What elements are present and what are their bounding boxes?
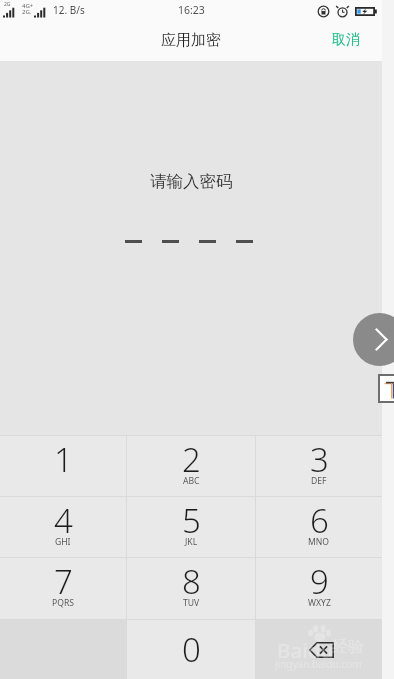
- staticText: jingyan.baidu.com: [275, 657, 362, 671]
- button[interactable]: 7: [0, 558, 126, 619]
- staticText: 4G+: [22, 2, 34, 10]
- staticText: 16:23: [178, 3, 205, 17]
- staticText: 取消: [332, 31, 360, 49]
- button[interactable]: Backspace: [256, 620, 382, 679]
- staticText: 2G.: [22, 8, 32, 16]
- staticText: 2G: [4, 1, 11, 8]
- staticText: PQRS: [52, 597, 74, 609]
- staticText: 1: [54, 437, 73, 482]
- staticText: 经验: [332, 637, 364, 657]
- staticText: ABC: [183, 475, 200, 487]
- button[interactable]: 1: [0, 436, 126, 496]
- button[interactable]: 3: [256, 436, 382, 496]
- staticText: 8: [182, 559, 201, 604]
- button[interactable]: 0: [127, 620, 255, 679]
- staticText: 12. B/s: [53, 3, 85, 17]
- button[interactable]: 5: [127, 497, 255, 557]
- staticText: GHI: [55, 536, 71, 548]
- button[interactable]: 8: [127, 558, 255, 619]
- button[interactable]: 取消: [310, 25, 382, 59]
- staticText: 请输入密码: [150, 171, 233, 192]
- button[interactable]: 6: [256, 497, 382, 557]
- staticText: 2: [182, 437, 201, 482]
- staticText: 7: [54, 559, 73, 604]
- staticText: DEF: [311, 475, 327, 487]
- staticText: MNO: [308, 536, 330, 548]
- staticText: 4: [54, 498, 73, 543]
- staticText: Baidu: [277, 636, 334, 664]
- staticText: 9: [310, 559, 329, 604]
- staticText: WXYZ: [308, 597, 331, 609]
- staticText: 0: [182, 627, 201, 672]
- staticText: JKL: [185, 536, 198, 548]
- staticText: 5: [182, 498, 201, 543]
- button[interactable]: 9: [256, 558, 382, 619]
- staticText: 应用加密: [161, 31, 221, 50]
- staticText: TUV: [183, 597, 200, 609]
- button[interactable]: 4: [0, 497, 126, 557]
- staticText: 3: [310, 437, 329, 482]
- button[interactable]: 2: [127, 436, 255, 496]
- button[interactable]: Expand floating window: [353, 313, 394, 366]
- button[interactable]: Floating app: [380, 376, 394, 401]
- staticText: 6: [310, 498, 329, 543]
